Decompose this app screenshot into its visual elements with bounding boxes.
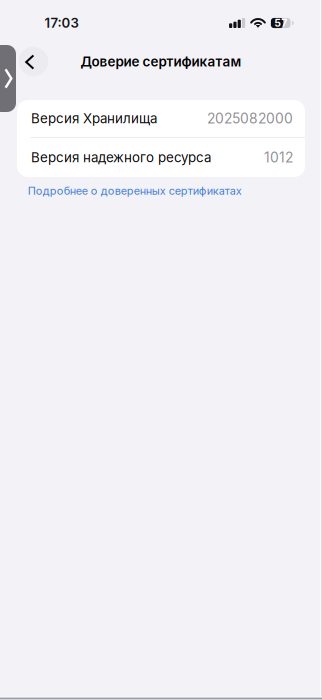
staticText: Версия Хранилища [31, 110, 157, 126]
staticText: 1012 [264, 149, 293, 166]
staticText: Версия надежного ресурса [31, 149, 211, 165]
staticText: 17:03 [44, 15, 78, 31]
staticText: Подробнее о доверенных сертификатах [28, 184, 242, 197]
button[interactable]: Версия Хранилища [17, 100, 305, 137]
button[interactable]: Подробнее о доверенных сертификатах [17, 177, 305, 201]
button[interactable]: Версия надежного ресурса [17, 138, 305, 177]
button[interactable]: Back [19, 47, 48, 76]
staticText: 2025082000 [207, 110, 293, 127]
button[interactable]: Open side panel [0, 45, 16, 112]
staticText: 57 [274, 17, 287, 29]
staticText: Доверие сертификатам [80, 53, 241, 70]
